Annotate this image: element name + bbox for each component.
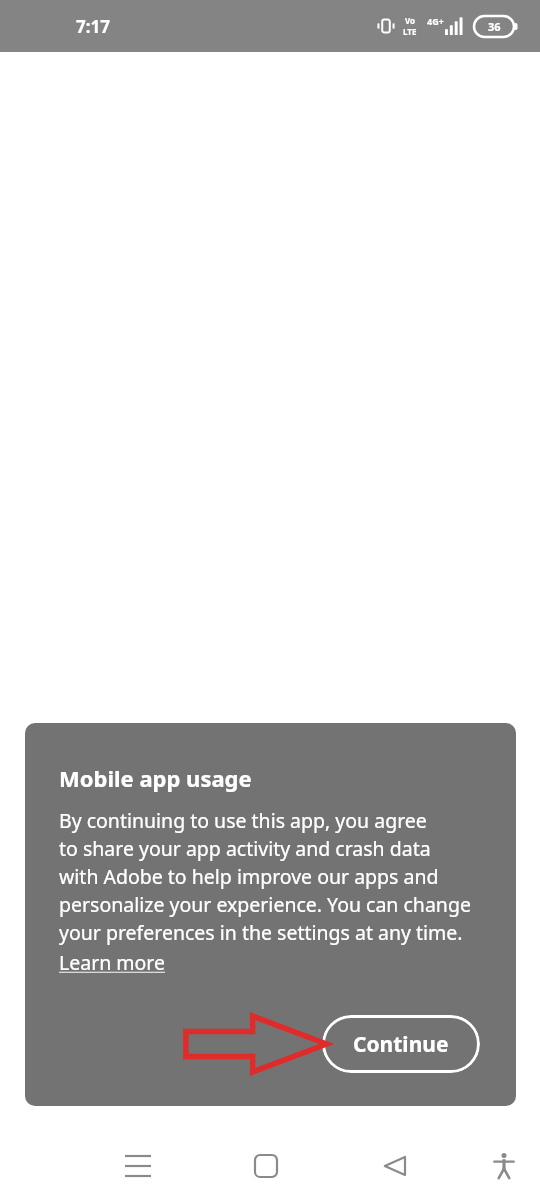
staticText: 4G+ (427, 15, 444, 27)
staticText: 7:17 (76, 15, 110, 38)
staticText: 36 (488, 19, 501, 34)
button[interactable]: Recent apps (112, 1140, 164, 1192)
staticText: LTE (403, 26, 417, 37)
button[interactable]: Back (368, 1140, 420, 1192)
button[interactable]: Home (240, 1140, 292, 1192)
button[interactable]: Continue (322, 1015, 480, 1073)
button[interactable]: Learn more (59, 949, 166, 976)
staticText: By continuing to use this app, you agree… (59, 807, 471, 946)
button[interactable]: Accessibility (478, 1140, 530, 1192)
staticText: Mobile app usage (59, 763, 252, 793)
staticText: Vo (405, 15, 416, 26)
staticText: Learn more (59, 949, 166, 976)
staticText: Continue (353, 1030, 449, 1059)
